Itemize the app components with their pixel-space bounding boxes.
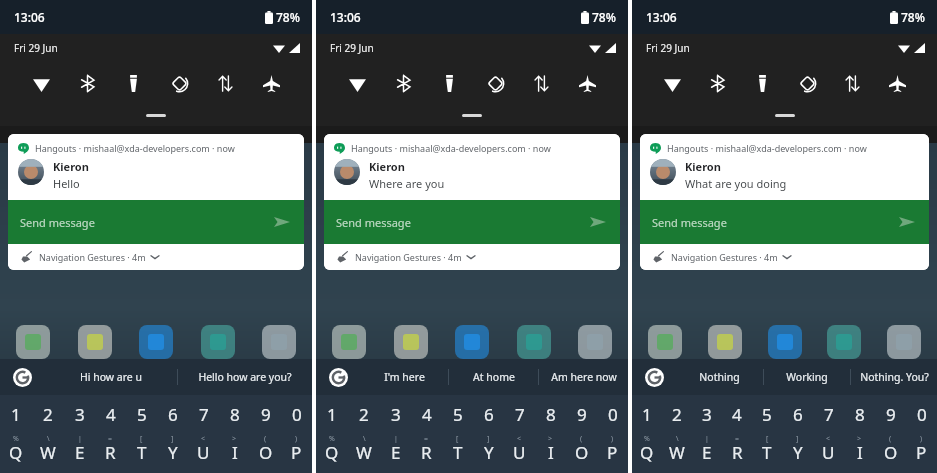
button[interactable]: Data usage [526, 68, 556, 98]
button[interactable]: > [219, 433, 250, 473]
button[interactable]: < [188, 433, 219, 473]
button[interactable]: 5 [442, 395, 473, 433]
button[interactable]: 6 [782, 395, 813, 433]
button[interactable]: 8 [535, 395, 566, 433]
button[interactable]: Wi-Fi [342, 68, 372, 98]
button[interactable]: Wi-Fi [657, 68, 687, 98]
button[interactable]: Navigation Gestures · 4m [20, 244, 304, 270]
button[interactable]: 3 [64, 395, 95, 433]
button[interactable]: Hangouts · mishaal@xda-developers.com · … [324, 134, 620, 200]
button[interactable]: Bluetooth [702, 68, 732, 98]
button[interactable]: Navigation Gestures · 4m [336, 244, 620, 270]
button[interactable]: 7 [188, 395, 219, 433]
button[interactable]: Bluetooth [72, 68, 102, 98]
button[interactable]: Send message [640, 200, 929, 244]
button[interactable]: Flashlight [747, 68, 777, 98]
button[interactable]: \ [32, 433, 64, 473]
button[interactable]: > [844, 433, 875, 473]
button[interactable]: Airplane mode [572, 68, 602, 98]
button[interactable]: < [813, 433, 844, 473]
button[interactable]: Google [632, 359, 676, 395]
button[interactable]: 6 [157, 395, 188, 433]
button[interactable]: Wi-Fi [26, 68, 56, 98]
button[interactable]: Hello how are you? [178, 359, 312, 395]
button[interactable]: | [64, 433, 95, 473]
button[interactable]: 7 [813, 395, 844, 433]
button[interactable]: 5 [752, 395, 782, 433]
button[interactable]: Navigation Gestures · 4m [652, 244, 929, 270]
button[interactable]: ( [875, 433, 906, 473]
button[interactable]: Data usage [837, 68, 867, 98]
button[interactable]: Auto-rotate [792, 68, 822, 98]
button[interactable]: ) [597, 433, 628, 473]
button[interactable]: Airplane mode [256, 68, 286, 98]
button[interactable]: 9 [875, 395, 906, 433]
button[interactable]: I'm here [360, 359, 448, 395]
button[interactable]: \ [662, 433, 692, 473]
button[interactable]: 8 [844, 395, 875, 433]
button[interactable]: 2 [662, 395, 692, 433]
button[interactable]: ] [782, 433, 813, 473]
button[interactable]: Hangouts · mishaal@xda-developers.com · … [640, 134, 929, 200]
button[interactable]: | [380, 433, 411, 473]
button[interactable]: Flashlight [434, 68, 464, 98]
button[interactable]: 2 [348, 395, 380, 433]
button[interactable]: 4 [95, 395, 126, 433]
button[interactable]: ( [566, 433, 597, 473]
button[interactable]: = [95, 433, 126, 473]
button[interactable]: % [316, 433, 348, 473]
button[interactable]: 3 [692, 395, 722, 433]
button[interactable]: 9 [566, 395, 597, 433]
button[interactable]: [ [442, 433, 473, 473]
button[interactable]: Data usage [210, 68, 240, 98]
button[interactable]: = [411, 433, 442, 473]
button[interactable]: Nothing [676, 359, 763, 395]
button[interactable]: % [0, 433, 32, 473]
button[interactable]: Airplane mode [882, 68, 912, 98]
button[interactable]: 3 [380, 395, 411, 433]
button[interactable]: Auto-rotate [480, 68, 510, 98]
button[interactable]: 0 [906, 395, 937, 433]
button[interactable]: ] [157, 433, 188, 473]
button[interactable]: Am here now [539, 359, 628, 395]
button[interactable]: 1 [0, 395, 32, 433]
button[interactable]: 4 [411, 395, 442, 433]
button[interactable]: [ [126, 433, 157, 473]
button[interactable]: \ [348, 433, 380, 473]
button[interactable]: At home [449, 359, 538, 395]
button[interactable]: | [692, 433, 722, 473]
button[interactable]: 1 [316, 395, 348, 433]
button[interactable]: Nothing. You? [851, 359, 937, 395]
button[interactable]: 1 [632, 395, 662, 433]
button[interactable]: 9 [250, 395, 281, 433]
staticText: % [329, 434, 335, 444]
button[interactable]: Flashlight [118, 68, 148, 98]
button[interactable]: 0 [597, 395, 628, 433]
button[interactable]: Google [316, 359, 360, 395]
button[interactable]: % [632, 433, 662, 473]
button[interactable]: 2 [32, 395, 64, 433]
button[interactable]: 7 [504, 395, 535, 433]
button[interactable]: Google [0, 359, 44, 395]
button[interactable]: > [535, 433, 566, 473]
button[interactable]: 8 [219, 395, 250, 433]
button[interactable]: ) [281, 433, 312, 473]
button[interactable]: Hangouts · mishaal@xda-developers.com · … [8, 134, 304, 200]
button[interactable]: ( [250, 433, 281, 473]
button[interactable]: Bluetooth [388, 68, 418, 98]
button[interactable]: Auto-rotate [164, 68, 194, 98]
button[interactable]: 0 [281, 395, 312, 433]
staticText: 78% [592, 9, 616, 25]
button[interactable]: 6 [473, 395, 504, 433]
button[interactable]: ) [906, 433, 937, 473]
button[interactable]: Hi how are u [44, 359, 177, 395]
button[interactable]: = [722, 433, 752, 473]
button[interactable]: Send message [324, 200, 620, 244]
button[interactable]: Send message [8, 200, 304, 244]
button[interactable]: [ [752, 433, 782, 473]
button[interactable]: 4 [722, 395, 752, 433]
button[interactable]: 5 [126, 395, 157, 433]
button[interactable]: ] [473, 433, 504, 473]
button[interactable]: Working [764, 359, 850, 395]
button[interactable]: < [504, 433, 535, 473]
